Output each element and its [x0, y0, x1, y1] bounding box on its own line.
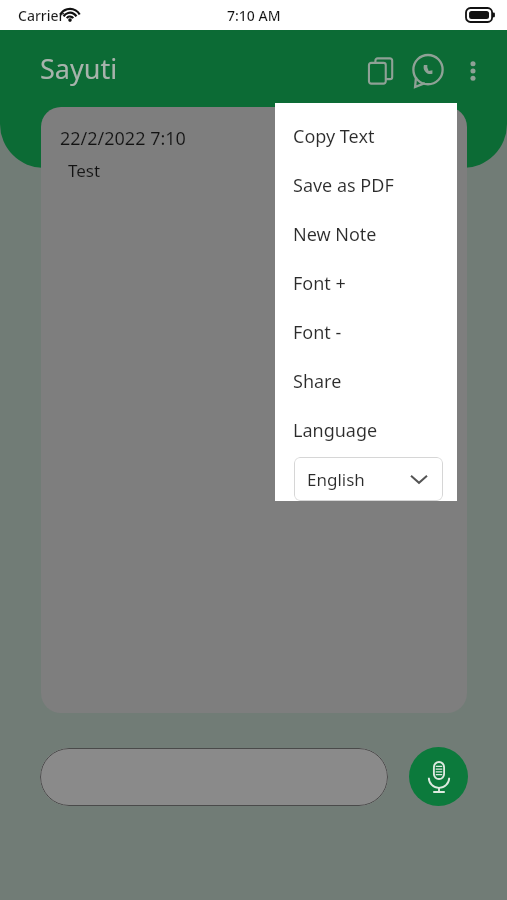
button[interactable]: Save as PDF [275, 161, 457, 210]
staticText: Test [68, 159, 101, 182]
button[interactable]: Voice input [409, 747, 468, 806]
button[interactable]: New Note [275, 210, 457, 259]
staticText: Language [293, 418, 378, 443]
button[interactable]: WhatsApp [407, 50, 449, 92]
staticText: Copy Text [293, 124, 375, 149]
staticText: Font - [293, 320, 342, 345]
staticText: Carrier [18, 6, 65, 25]
button[interactable]: Copy [361, 51, 401, 91]
button[interactable]: Language [275, 406, 457, 455]
button[interactable]: More options [453, 51, 493, 91]
staticText: Share [293, 369, 342, 394]
button[interactable]: English [294, 457, 443, 501]
button[interactable]: 22/2/2022 7:10 [41, 107, 467, 713]
button[interactable]: Font - [275, 308, 457, 357]
staticText: Sayuti [40, 50, 118, 87]
button[interactable]: Share [275, 357, 457, 406]
button[interactable] [40, 748, 388, 806]
button[interactable]: Font + [275, 259, 457, 308]
button[interactable]: Copy Text [275, 112, 457, 161]
staticText: Font + [293, 271, 346, 296]
staticText: 7:10 AM [227, 6, 281, 25]
staticText: New Note [293, 222, 377, 247]
staticText: 22/2/2022 7:10 [60, 126, 186, 151]
staticText: Save as PDF [293, 173, 394, 198]
staticText: English [307, 468, 365, 491]
